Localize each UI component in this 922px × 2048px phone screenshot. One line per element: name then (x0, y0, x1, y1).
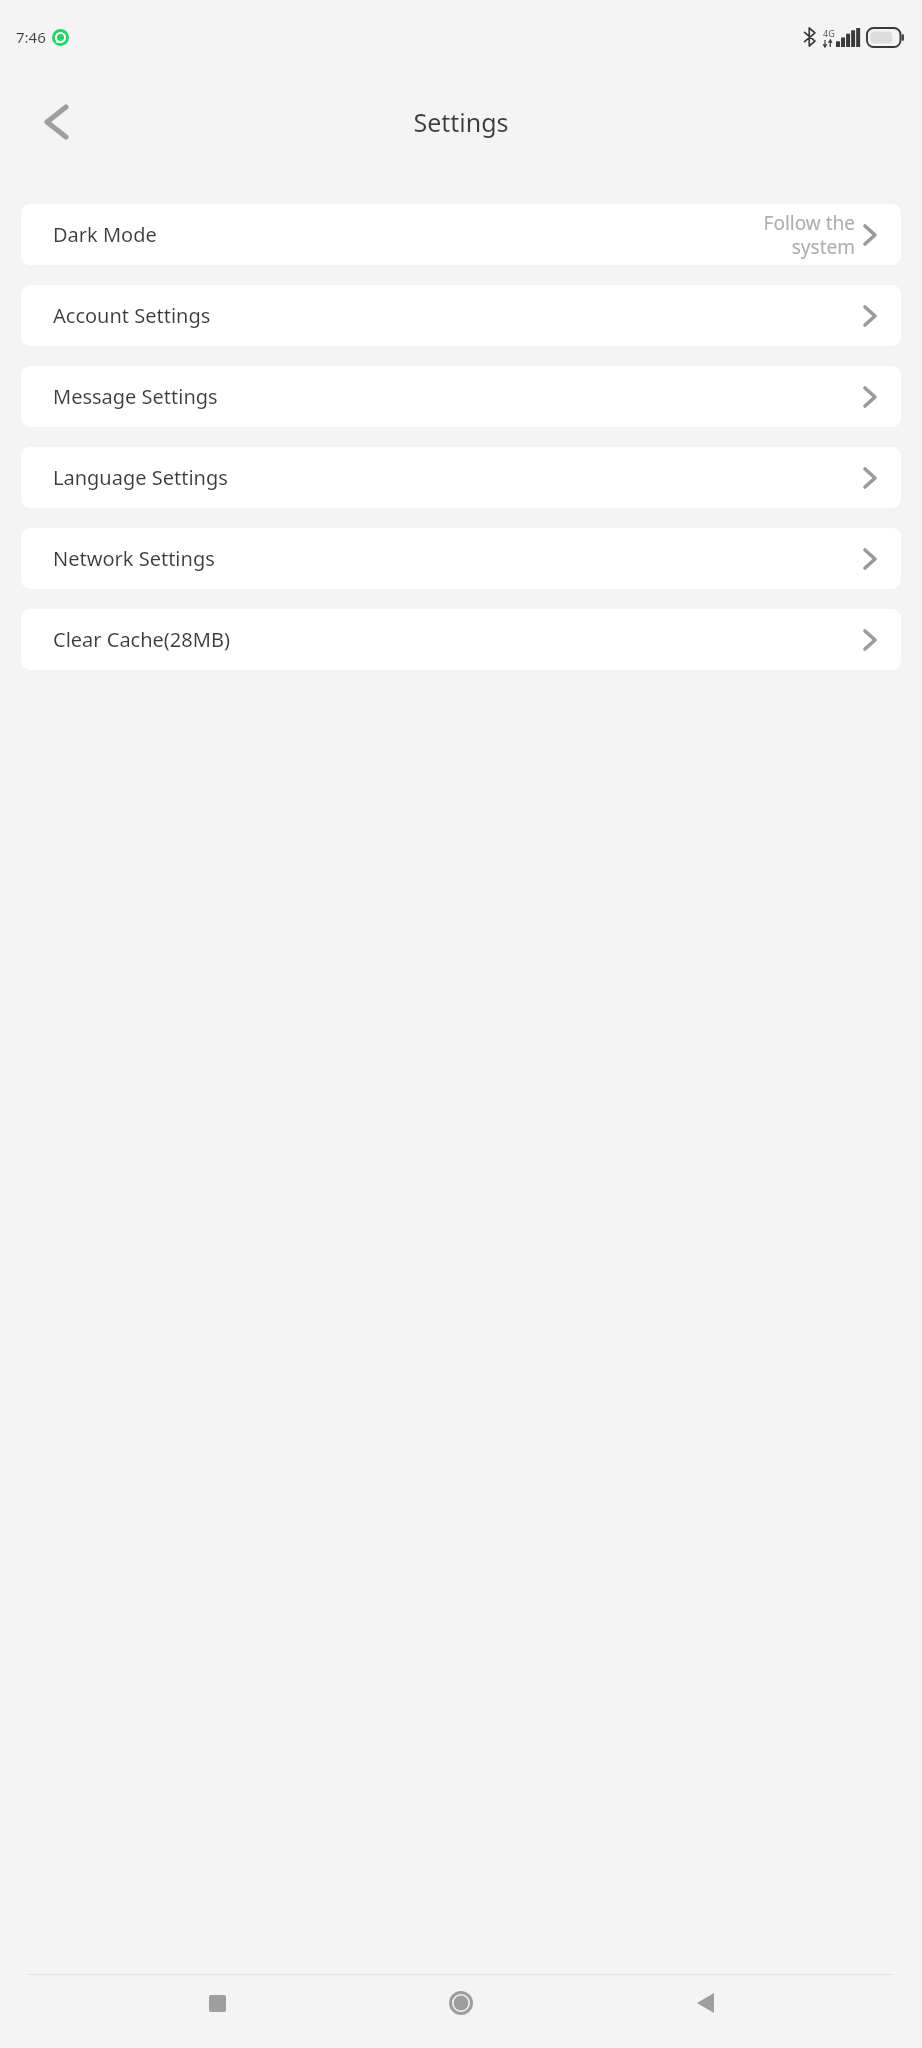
button[interactable]: Language Settings (21, 447, 901, 508)
button[interactable]: Network Settings (21, 528, 901, 589)
staticText: 7:46 (16, 27, 46, 47)
staticText: Message Settings (53, 383, 218, 410)
button[interactable]: Message Settings (21, 366, 901, 427)
staticText: Settings (413, 105, 509, 139)
staticText: Network Settings (53, 545, 215, 572)
staticText: Dark Mode (53, 221, 157, 248)
button[interactable]: Dark Mode (21, 204, 901, 265)
staticText: Language Settings (53, 464, 228, 491)
staticText: Account Settings (53, 302, 211, 329)
button[interactable]: Home (434, 1976, 488, 2030)
staticText: 4G (823, 27, 835, 39)
button[interactable]: Back (678, 1976, 732, 2030)
button[interactable]: Account Settings (21, 285, 901, 346)
staticText: Follow the system (759, 210, 855, 259)
button[interactable]: Back (30, 96, 82, 148)
button[interactable]: Clear Cache(28MB) (21, 609, 901, 670)
staticText: Clear Cache(28MB) (53, 626, 230, 653)
button[interactable]: Recent apps (190, 1976, 244, 2030)
